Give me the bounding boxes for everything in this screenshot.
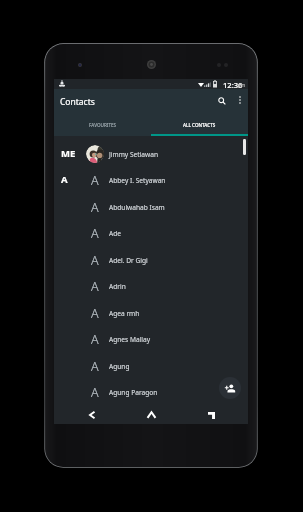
- staticText: Agung Paragon: [109, 388, 158, 397]
- staticText: Abbey I. Setyawan: [109, 176, 166, 185]
- button[interactable]: More options: [233, 93, 247, 107]
- staticText: A: [91, 225, 99, 242]
- staticText: Adel. Dr Gigi: [109, 256, 148, 265]
- staticText: A: [91, 172, 99, 189]
- staticText: A: [91, 252, 99, 269]
- button[interactable]: Recent apps: [202, 406, 220, 424]
- button[interactable]: A: [54, 353, 248, 379]
- button[interactable]: A: [54, 379, 248, 405]
- button[interactable]: FAVOURITES: [54, 117, 151, 136]
- button[interactable]: ME: [54, 141, 248, 167]
- staticText: Jimmy Setiawan: [109, 150, 158, 159]
- staticText: FAVOURITES: [89, 122, 117, 128]
- staticText: A: [91, 331, 99, 348]
- button[interactable]: Back: [83, 406, 101, 424]
- button[interactable]: A: [54, 194, 248, 220]
- button[interactable]: A: [54, 167, 248, 193]
- button[interactable]: ALL CONTACTS: [151, 117, 248, 136]
- button[interactable]: A: [54, 247, 248, 273]
- staticText: Agea rmh: [109, 309, 140, 318]
- staticText: A: [91, 199, 99, 216]
- staticText: pm: [238, 82, 246, 88]
- button[interactable]: Home: [142, 406, 160, 424]
- staticText: Adrin: [109, 282, 126, 291]
- staticText: ALL CONTACTS: [183, 122, 216, 128]
- staticText: Contacts: [60, 96, 95, 108]
- staticText: A: [91, 305, 99, 322]
- staticText: A: [61, 173, 68, 186]
- button[interactable]: Add contact: [219, 377, 241, 399]
- staticText: Agnes Mallay: [109, 335, 151, 344]
- staticText: Agung: [109, 362, 130, 371]
- staticText: A: [91, 278, 99, 295]
- staticText: Ade: [109, 229, 121, 238]
- button[interactable]: A: [54, 326, 248, 352]
- staticText: 12:36: [223, 80, 243, 90]
- staticText: Abdulwahab Isam: [109, 203, 165, 212]
- staticText: A: [91, 384, 99, 401]
- button[interactable]: A: [54, 300, 248, 326]
- button[interactable]: Search: [214, 93, 230, 109]
- button[interactable]: A: [54, 220, 248, 246]
- staticText: A: [91, 358, 99, 375]
- staticText: ME: [61, 147, 76, 160]
- button[interactable]: A: [54, 273, 248, 299]
